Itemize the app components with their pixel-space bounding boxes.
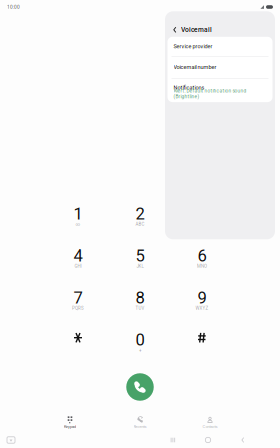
staticText: + (139, 348, 141, 353)
button[interactable]: Keypad (35, 412, 105, 432)
button[interactable]: Recent apps (165, 434, 181, 446)
staticText: 4 (73, 246, 82, 265)
staticText: ABC (135, 222, 144, 227)
button[interactable]: 9 (171, 279, 233, 321)
staticText: 5 (135, 246, 144, 265)
staticText: ∞ (75, 222, 80, 227)
staticText: PQRS (72, 306, 84, 311)
button[interactable]: 8 (109, 279, 171, 321)
button[interactable]: Notifications (167, 78, 272, 102)
staticText: 6 (197, 246, 206, 265)
button[interactable]: Call (120, 367, 160, 407)
button[interactable]: Contacts (175, 412, 245, 432)
staticText: Contacts (202, 424, 217, 429)
staticText: JKL (136, 264, 143, 269)
staticText: Voicemail number (173, 64, 216, 70)
button[interactable]: Service provider (167, 37, 272, 56)
button[interactable]: Back (235, 434, 251, 446)
staticText: 0 (135, 330, 144, 349)
staticText: 7 (73, 288, 82, 307)
staticText: WXYZ (195, 306, 208, 311)
button[interactable]: Hide keyboard (4, 434, 18, 446)
staticText: 9 (197, 288, 206, 307)
staticText: MNO (197, 264, 207, 269)
button[interactable]: 4 (47, 237, 109, 279)
button[interactable]: Back (169, 23, 181, 37)
staticText: TUV (135, 306, 144, 311)
button[interactable]: Voicemail number (167, 56, 272, 78)
button[interactable]: 5 (109, 237, 171, 279)
staticText: Alert: Default notification sound (Brigh… (173, 88, 246, 99)
button[interactable] (171, 321, 233, 363)
button[interactable]: 0 (109, 321, 171, 363)
button[interactable]: 2 (109, 195, 171, 237)
staticText: 2 (135, 204, 144, 223)
staticText: Service provider (173, 43, 212, 50)
button[interactable] (47, 321, 109, 363)
button[interactable]: Home (200, 434, 216, 446)
staticText: Notifications (173, 84, 204, 91)
staticText: 10:00 (7, 4, 20, 10)
button[interactable]: 1 (47, 195, 109, 237)
button[interactable]: 7 (47, 279, 109, 321)
staticText: Voicemail (181, 26, 212, 34)
button[interactable]: 6 (171, 237, 233, 279)
staticText: Keypad (64, 424, 76, 429)
staticText: Recents (133, 424, 146, 429)
staticText: GHI (74, 264, 81, 269)
staticText: 8 (135, 288, 144, 307)
staticText: 1 (73, 204, 82, 223)
button[interactable]: Voicemail (181, 24, 212, 36)
button[interactable]: Recents (105, 412, 175, 432)
